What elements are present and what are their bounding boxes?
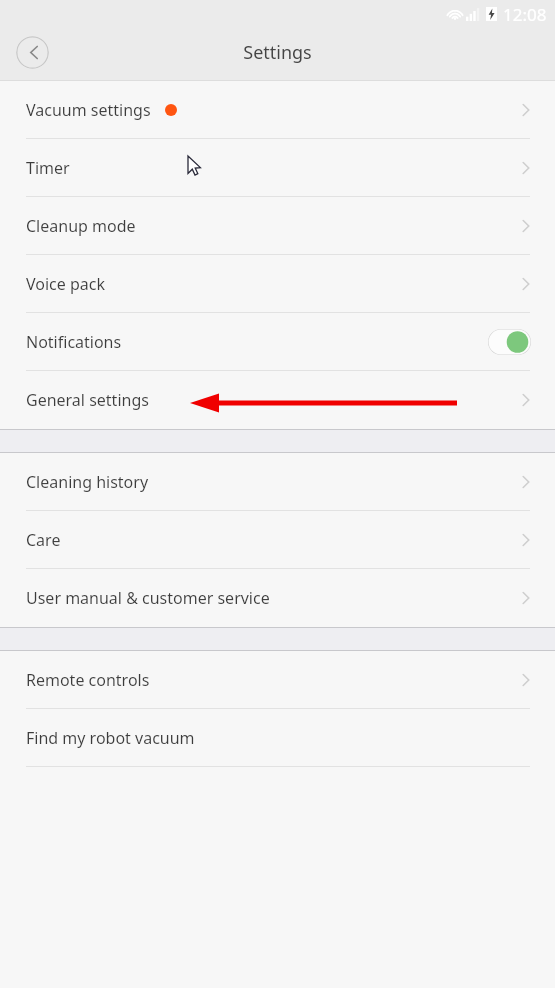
button[interactable]: Back: [16, 36, 49, 69]
staticText: Vacuum settings: [26, 99, 151, 121]
staticText: Cleanup mode: [26, 215, 136, 237]
button[interactable]: Voice pack: [0, 255, 555, 313]
staticText: Timer: [26, 157, 70, 179]
staticText: Cleaning history: [26, 471, 149, 493]
staticText: User manual & customer service: [26, 587, 270, 609]
button[interactable]: Cleaning history: [0, 453, 555, 511]
staticText: Notifications: [26, 331, 122, 353]
staticText: 12:08: [503, 3, 547, 26]
staticText: Settings: [0, 40, 555, 65]
staticText: Find my robot vacuum: [26, 727, 195, 749]
button[interactable]: Vacuum settings: [0, 81, 555, 139]
button[interactable]: Notifications toggle: [488, 329, 531, 355]
button[interactable]: Find my robot vacuum: [0, 709, 555, 767]
button[interactable]: Cleanup mode: [0, 197, 555, 255]
button[interactable]: User manual & customer service: [0, 569, 555, 627]
staticText: General settings: [26, 389, 149, 411]
staticText: Voice pack: [26, 273, 105, 295]
button[interactable]: Timer: [0, 139, 555, 197]
staticText: Remote controls: [26, 669, 150, 691]
button[interactable]: General settings: [0, 371, 555, 429]
button[interactable]: Remote controls: [0, 651, 555, 709]
button[interactable]: Care: [0, 511, 555, 569]
button[interactable]: Notifications: [0, 313, 555, 371]
staticText: Care: [26, 529, 61, 551]
